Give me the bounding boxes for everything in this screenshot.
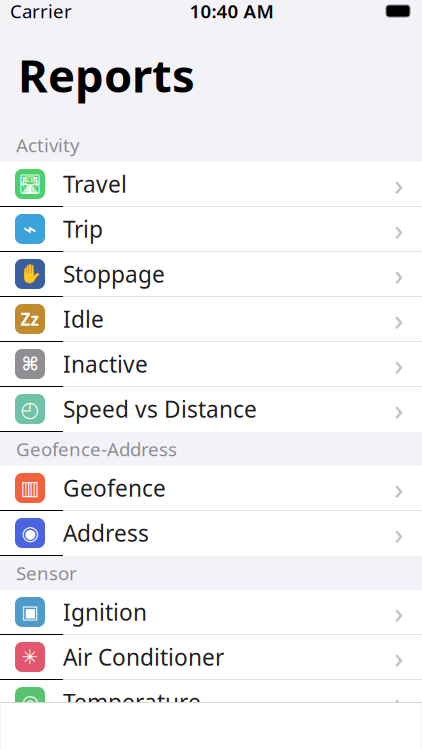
- staticText: ›: [394, 299, 404, 338]
- staticText: Geofence: [63, 473, 166, 503]
- staticText: ✳: [21, 646, 38, 668]
- staticText: ›: [394, 344, 404, 383]
- staticText: Speed vs Distance: [63, 394, 257, 424]
- staticText: ◴: [20, 397, 39, 421]
- staticText: Sensor: [16, 561, 77, 585]
- button[interactable]: ◎: [0, 680, 422, 725]
- staticText: ›: [394, 164, 404, 203]
- staticText: ›: [394, 254, 404, 293]
- staticText: Trip: [63, 214, 103, 244]
- staticText: ◎: [21, 691, 38, 713]
- button[interactable]: ▣: [0, 590, 422, 635]
- staticText: Carrier: [10, 0, 72, 23]
- button[interactable]: 🛣: [0, 162, 422, 207]
- staticText: Activity: [16, 133, 80, 157]
- staticText: ›: [394, 468, 404, 507]
- button[interactable]: ⌘: [0, 342, 422, 387]
- staticText: ›: [394, 592, 404, 631]
- staticText: Zz: [20, 307, 39, 330]
- button[interactable]: ⌁: [0, 207, 422, 252]
- staticText: ◉: [21, 522, 38, 544]
- button[interactable]: ✋: [0, 252, 422, 297]
- staticText: ▣: [21, 601, 39, 623]
- button[interactable]: ✳: [0, 635, 422, 680]
- staticText: ⌘: [21, 353, 38, 375]
- button[interactable]: ◴: [0, 387, 422, 432]
- staticText: ›: [394, 389, 404, 428]
- staticText: Reports: [18, 45, 195, 105]
- staticText: Geofence-Address: [16, 437, 177, 461]
- staticText: Travel: [63, 169, 127, 199]
- staticText: ›: [394, 209, 404, 248]
- staticText: ✋: [18, 263, 41, 285]
- staticText: Ignition: [63, 597, 147, 627]
- staticText: ⌁: [23, 216, 37, 242]
- staticText: 10:40 AM: [189, 0, 273, 23]
- staticText: Air Conditioner: [63, 642, 224, 672]
- staticText: Inactive: [63, 349, 148, 379]
- button[interactable]: ▥: [0, 466, 422, 511]
- staticText: Temperature: [63, 687, 201, 717]
- staticText: ›: [394, 637, 404, 676]
- button[interactable]: ◉: [0, 511, 422, 556]
- staticText: ›: [394, 682, 404, 721]
- staticText: Idle: [63, 304, 104, 334]
- button[interactable]: Zz: [0, 297, 422, 342]
- staticText: 🛣: [18, 173, 42, 195]
- staticText: ▥: [20, 477, 39, 499]
- staticText: Stoppage: [63, 259, 165, 289]
- staticText: Address: [63, 518, 149, 548]
- staticText: ›: [394, 513, 404, 552]
